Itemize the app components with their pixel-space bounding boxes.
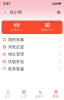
staticText: 浏览足迹 xyxy=(8,44,24,49)
staticText: 我的订单 xyxy=(41,28,53,31)
staticText: 张小明 xyxy=(10,10,22,15)
button[interactable]: Settings xyxy=(56,10,61,15)
button[interactable]: 地址管理 xyxy=(0,51,64,58)
staticText: 9:41 xyxy=(3,1,10,6)
button[interactable]: 首页 xyxy=(0,90,16,98)
button[interactable]: 优惠券包 xyxy=(0,58,64,65)
staticText: 购物车 xyxy=(35,95,44,98)
staticText: 分类 xyxy=(21,95,27,98)
button[interactable]: 浏览足迹 xyxy=(0,43,64,51)
button[interactable]: 分类 xyxy=(16,90,32,98)
button[interactable]: 联系客服 xyxy=(0,65,64,72)
button[interactable]: 我的 xyxy=(48,90,64,98)
staticText: 会员中心 xyxy=(11,28,23,31)
button[interactable]: 我的订单 xyxy=(32,23,62,31)
staticText: 联系客服 xyxy=(8,66,24,71)
button[interactable]: Profile photo xyxy=(2,10,8,15)
staticText: 首页 xyxy=(5,95,11,98)
staticText: 我的 xyxy=(53,95,59,98)
staticText: 优惠券包 xyxy=(8,59,24,64)
button[interactable]: 购物车 xyxy=(32,90,48,98)
button[interactable]: 我的收藏 xyxy=(0,36,64,43)
button[interactable]: 会员中心 xyxy=(1,23,32,31)
staticText: 地址管理 xyxy=(8,52,24,57)
staticText: 我的收藏 xyxy=(8,37,24,42)
